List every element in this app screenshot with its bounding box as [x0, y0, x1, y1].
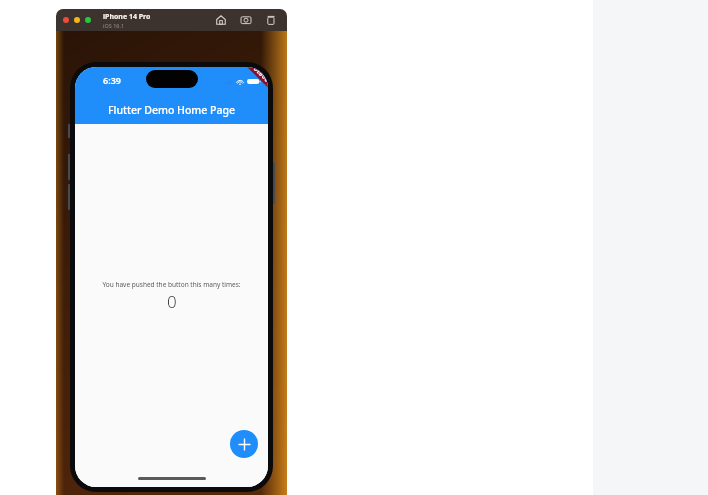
- staticText: 6:39: [103, 74, 121, 86]
- button[interactable]: Volume up: [68, 154, 71, 180]
- button[interactable]: Screenshot: [239, 13, 253, 27]
- button[interactable]: Increment: [230, 430, 258, 458]
- button[interactable]: Rotate: [264, 13, 278, 27]
- button[interactable]: Side button: [272, 162, 275, 204]
- staticText: You have pushed the button this many tim…: [102, 280, 241, 289]
- button[interactable]: Mute switch: [68, 124, 71, 138]
- button[interactable]: Close: [63, 17, 69, 23]
- staticText: 0: [167, 290, 177, 313]
- button[interactable]: Home: [214, 13, 228, 27]
- button[interactable]: Minimize: [74, 17, 80, 23]
- button[interactable]: Maximize: [85, 17, 91, 23]
- staticText: iPhone 14 Pro: [103, 12, 151, 22]
- staticText: DEBUG: [252, 67, 268, 84]
- button[interactable]: Volume down: [68, 184, 71, 210]
- staticText: Flutter Demo Home Page: [108, 103, 235, 117]
- staticText: iOS 16.1: [103, 22, 125, 29]
